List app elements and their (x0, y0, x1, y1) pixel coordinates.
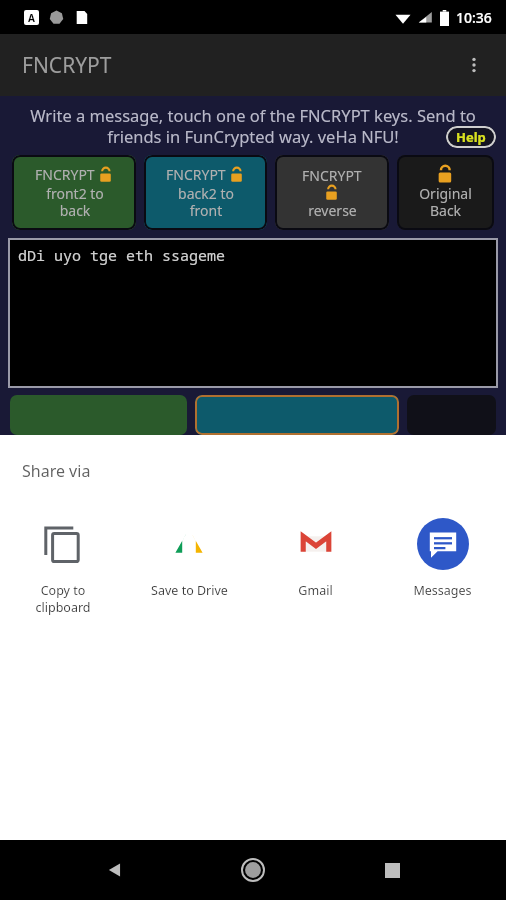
staticText: Save to Drive (151, 582, 228, 599)
staticText: FNCRYPT (22, 51, 112, 80)
button[interactable]: More options (452, 43, 496, 87)
button[interactable] (195, 395, 399, 435)
button[interactable]: FNCRYPT (144, 155, 267, 230)
staticText: dDi uyo tge eth ssageme (18, 245, 226, 265)
button[interactable]: dDi uyo tge eth ssageme (8, 238, 498, 388)
staticText: 10:36 (456, 8, 492, 27)
button[interactable]: FNCRYPT (275, 155, 389, 230)
staticText: Gmail (298, 582, 333, 599)
staticText: Write a message, touch one of the FNCRYP… (12, 104, 494, 148)
staticText: FNCRYPT (302, 166, 362, 185)
staticText: Share via (22, 460, 91, 482)
staticText: Messages (413, 582, 472, 599)
staticText: Copy to clipboard (35, 582, 91, 615)
button[interactable]: Back (91, 846, 139, 894)
button[interactable]: Copy to clipboard (0, 512, 126, 619)
button[interactable]: FNCRYPT (12, 155, 136, 230)
button[interactable]: Save to Drive (126, 512, 252, 603)
button[interactable]: Original Back (397, 155, 494, 230)
button[interactable] (407, 395, 496, 435)
staticText: FNCRYPT (35, 165, 95, 184)
button[interactable]: Recent apps (368, 846, 416, 894)
button[interactable] (10, 395, 187, 435)
staticText: Help (456, 128, 486, 146)
button[interactable]: Gmail (252, 512, 379, 603)
staticText: A (28, 11, 35, 25)
staticText: back2 to front (178, 184, 234, 220)
staticText: front2 to back (46, 184, 104, 220)
staticText: Original Back (419, 184, 472, 220)
staticText: FNCRYPT (166, 165, 226, 184)
button[interactable]: Help (446, 126, 496, 148)
staticText: reverse (308, 201, 357, 220)
button[interactable]: Home (229, 846, 277, 894)
button[interactable]: Messages (379, 512, 506, 603)
